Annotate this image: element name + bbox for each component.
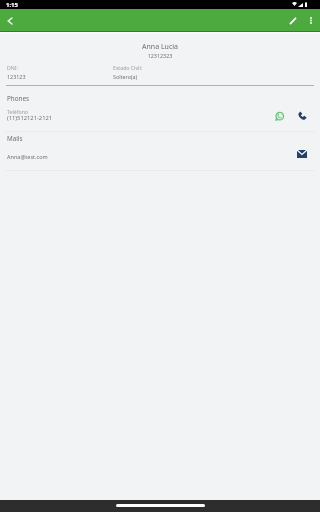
staticText: 1:15 (6, 1, 18, 9)
button[interactable]: Call (295, 108, 309, 122)
staticText: Anna Lucia (0, 42, 320, 52)
staticText: Estado Civil: (113, 64, 143, 71)
staticText: Mails (7, 134, 23, 143)
button[interactable]: WhatsApp (272, 109, 286, 123)
staticText: Soltero(a) (113, 73, 138, 80)
button[interactable]: Edit (284, 9, 302, 31)
staticText: DNI: (7, 64, 18, 71)
staticText: 123123 (7, 73, 26, 80)
button[interactable]: More options (302, 9, 320, 31)
button[interactable]: Email (295, 147, 309, 161)
staticText: Anna@test.com (7, 153, 48, 160)
button[interactable]: Back (0, 9, 19, 31)
staticText: (11)512121-2121 (7, 114, 53, 122)
staticText: Teléfono (7, 108, 28, 115)
staticText: Phones (7, 94, 29, 103)
staticText: 12312323 (0, 52, 320, 59)
